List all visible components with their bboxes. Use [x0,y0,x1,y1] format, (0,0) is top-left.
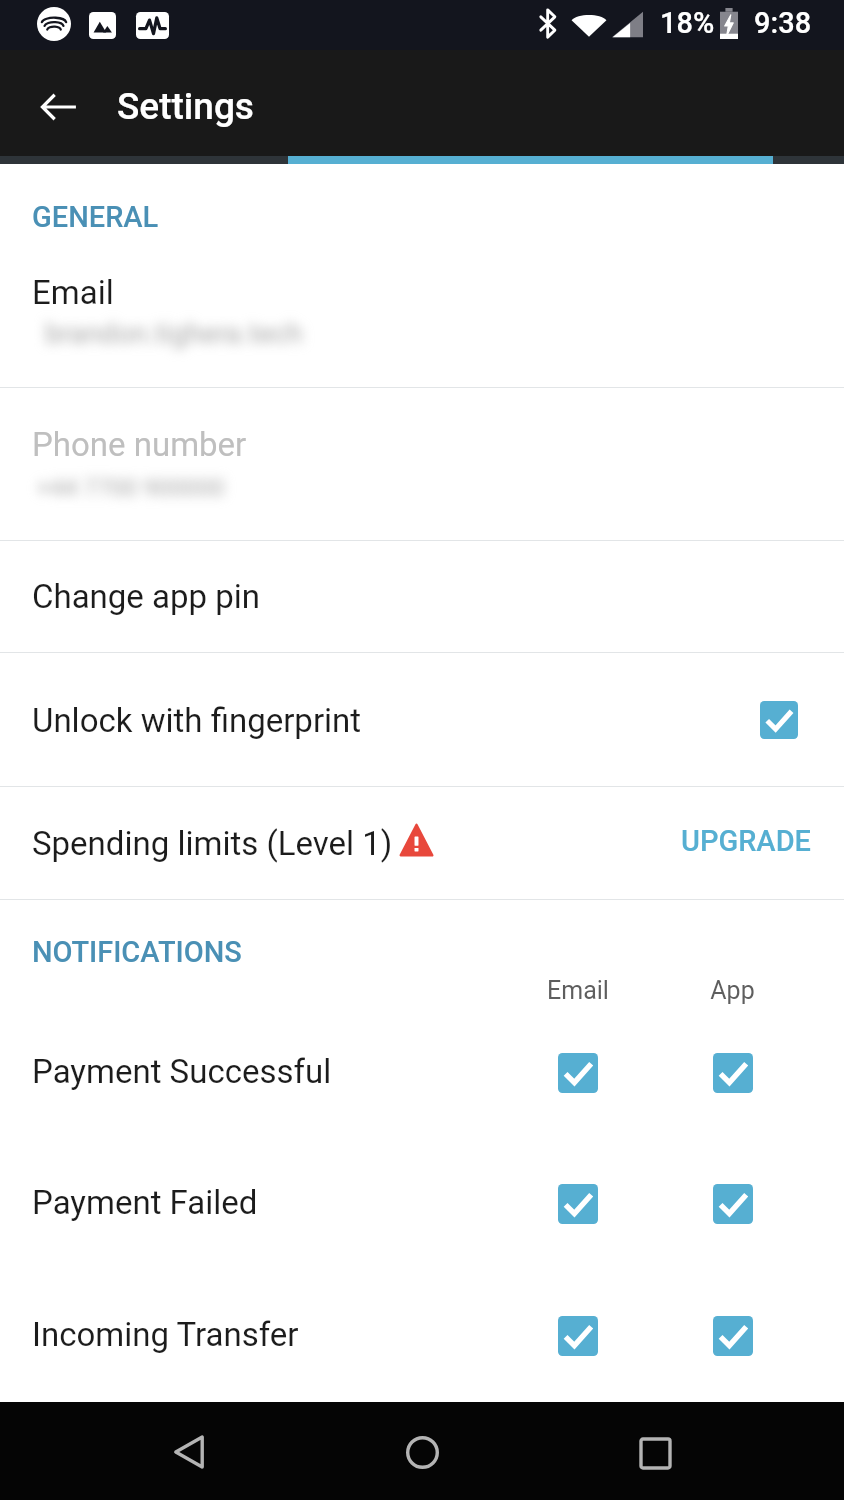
button[interactable]: Phone number [0,388,844,540]
button[interactable]: Incoming Transfer [0,1268,520,1399]
staticText: Settings [117,85,254,128]
button[interactable]: Payment Failed app notification [685,1168,781,1240]
button[interactable]: Payment Failed [0,1137,520,1268]
staticText: Phone number [32,425,247,464]
staticText: +44 7700 900000 [37,474,225,502]
button[interactable]: Spending limits (Level 1) [0,787,844,899]
staticText: Payment Successful [32,1052,332,1091]
staticText: Incoming Transfer [32,1315,299,1354]
staticText: brandon.tighera.tech [45,317,303,350]
button[interactable]: Email [0,166,844,387]
button[interactable]: Payment Successful email notification [530,1037,626,1109]
staticText: 18% [660,6,715,40]
button[interactable]: Home [355,1402,489,1500]
staticText: Email [32,273,114,312]
button[interactable]: Change app pin [0,541,844,652]
staticText: 9:38 [754,6,812,40]
button[interactable]: Recent apps [588,1402,722,1500]
staticText: App [710,976,755,1005]
button[interactable]: UPGRADE [659,810,833,872]
staticText: UPGRADE [681,824,811,858]
button[interactable]: Back [12,50,106,155]
staticText: Payment Failed [32,1183,258,1222]
staticText: NOTIFICATIONS [32,935,242,969]
staticText: Unlock with fingerprint [32,701,362,740]
button[interactable]: Payment Failed email notification [530,1168,626,1240]
staticText: GENERAL [32,200,159,234]
button[interactable]: Payment Successful app notification [685,1037,781,1109]
button[interactable]: Unlock with fingerprint [732,686,826,754]
button[interactable]: Unlock with fingerprint [0,653,844,786]
button[interactable]: Incoming Transfer app notification [685,1300,781,1372]
button[interactable]: Incoming Transfer email notification [530,1300,626,1372]
staticText: Email [547,976,609,1005]
button[interactable]: Payment Successful [0,1006,520,1137]
staticText: Change app pin [32,577,261,616]
button[interactable]: Back [122,1402,256,1500]
staticText: Spending limits (Level 1) [32,824,393,863]
